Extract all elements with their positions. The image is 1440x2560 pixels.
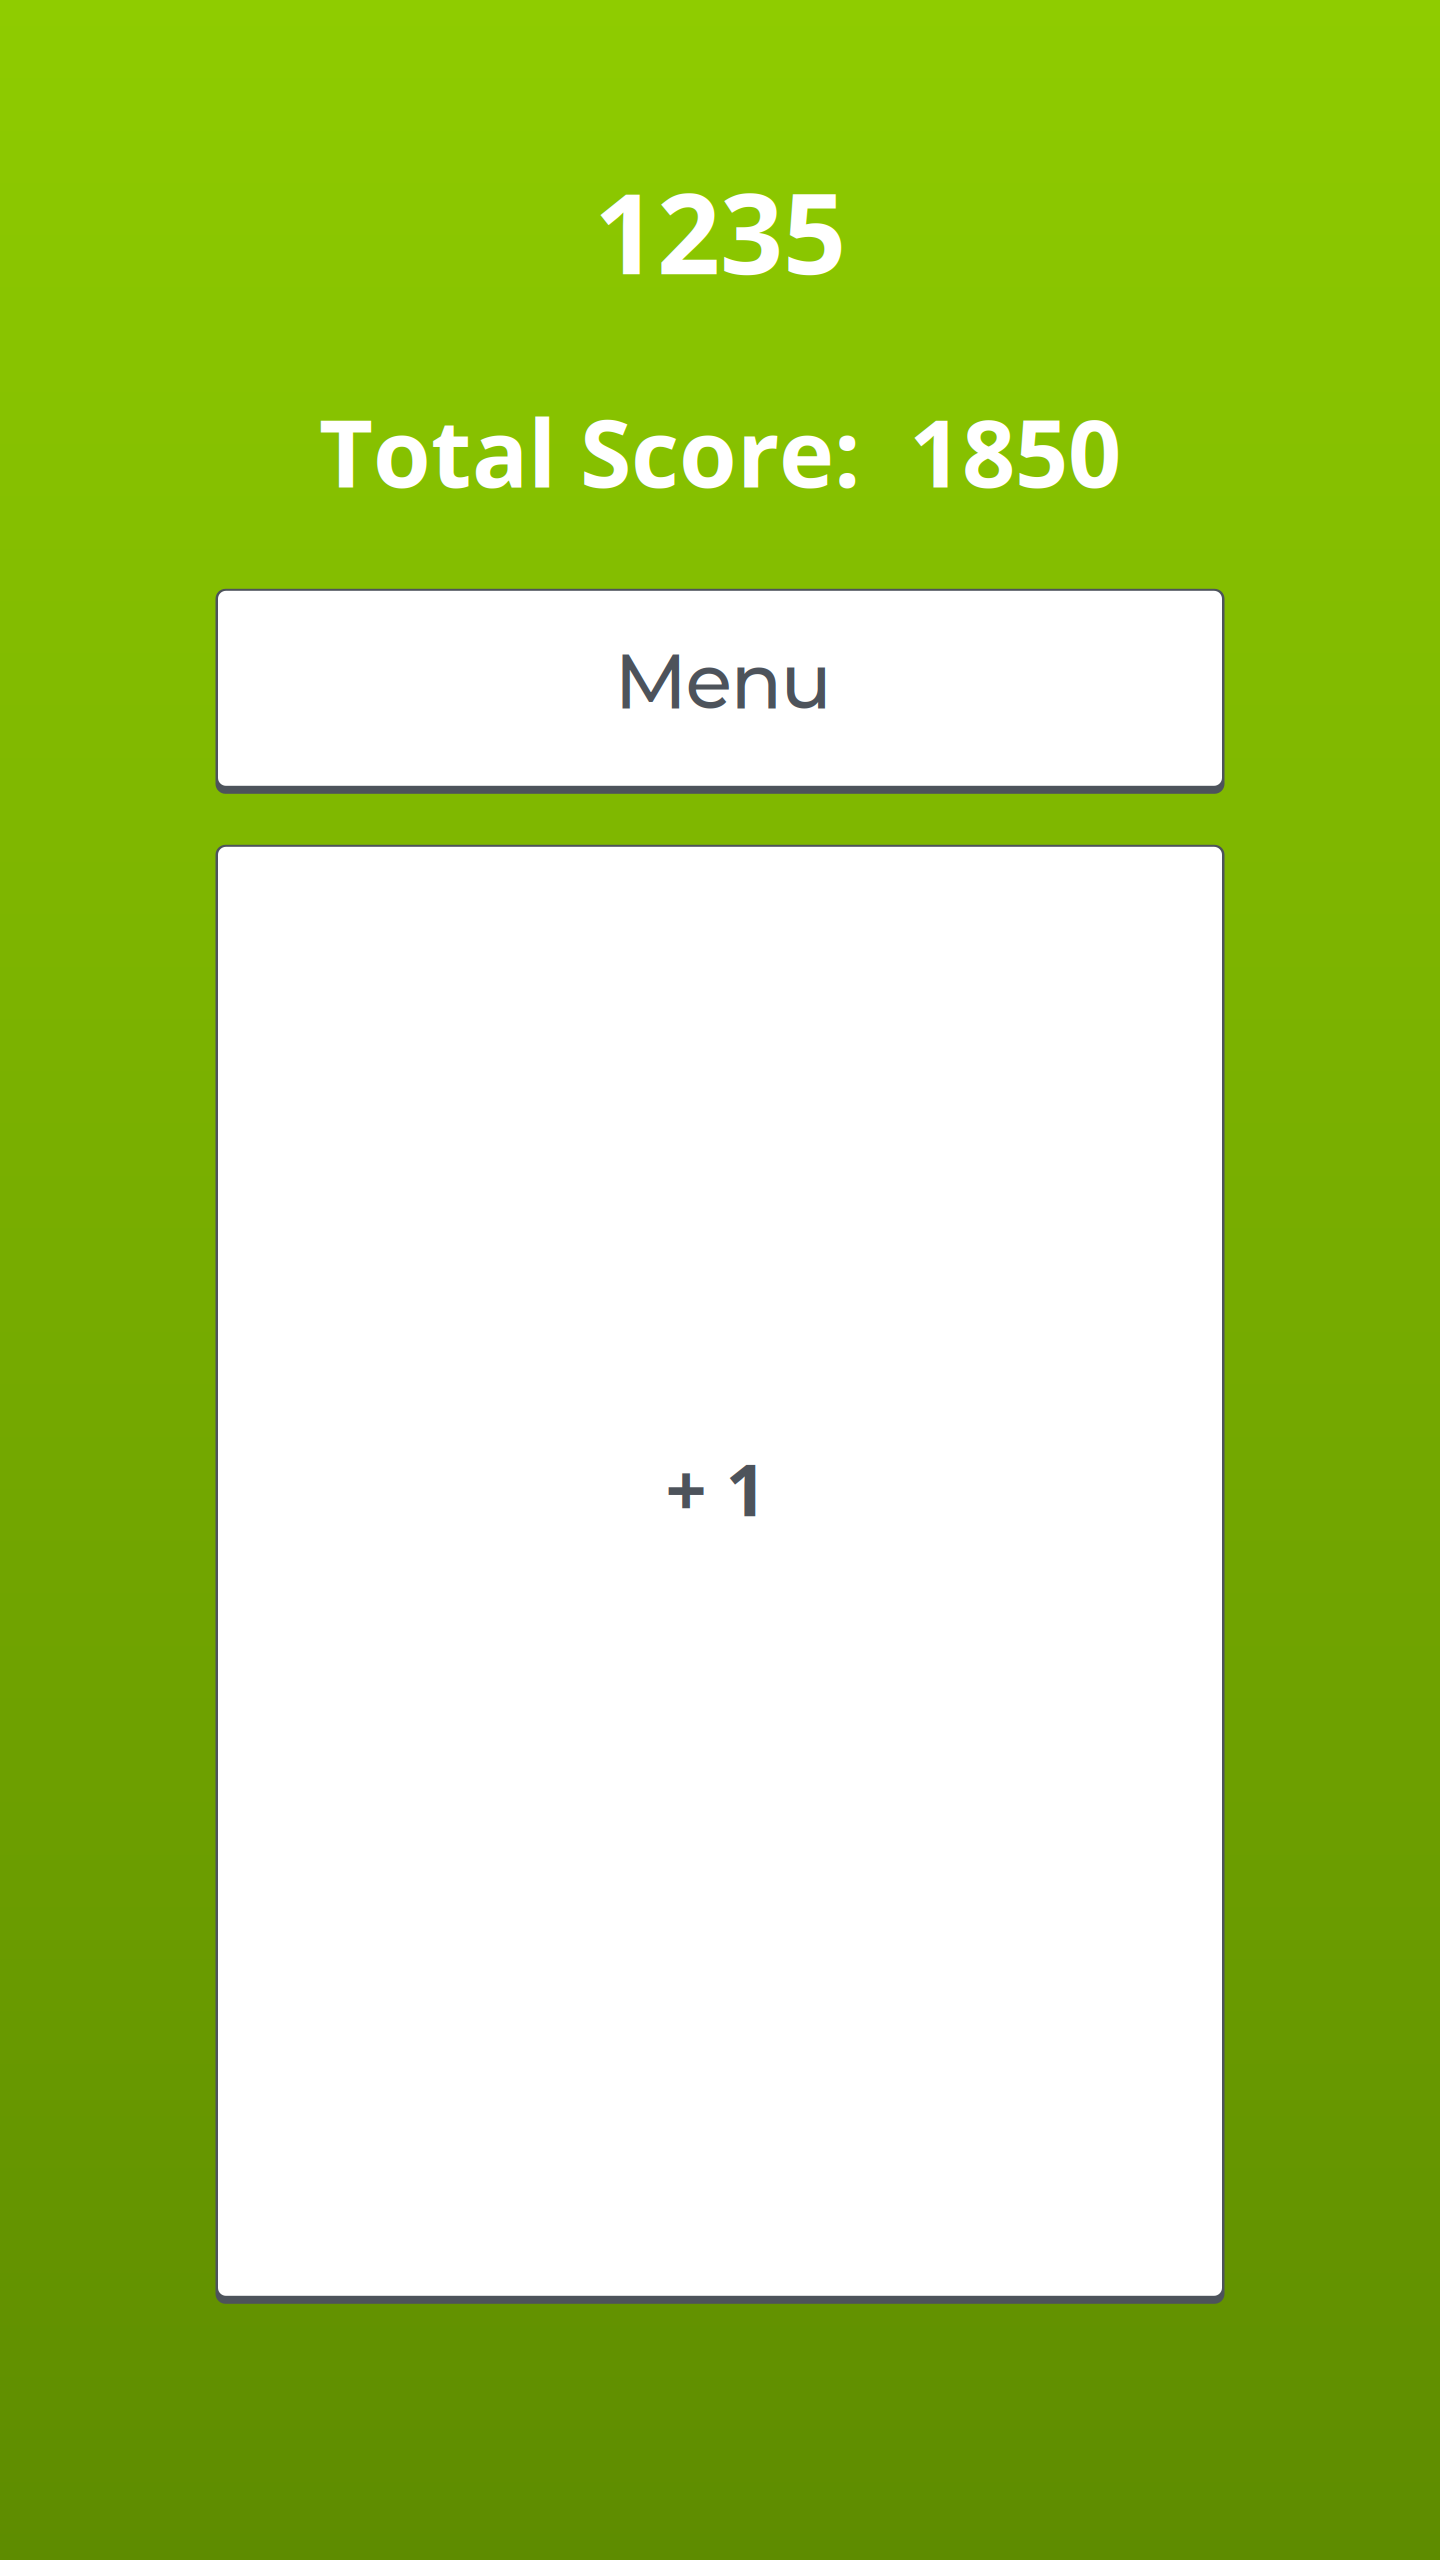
staticText: Total Score: 1850 xyxy=(319,388,1121,515)
staticText: + 1 xyxy=(665,1439,766,1537)
button[interactable]: Menu xyxy=(215,589,1224,794)
staticText: Menu xyxy=(614,635,831,728)
button[interactable]: + 1 xyxy=(215,845,1224,2304)
staticText: 1235 xyxy=(594,156,846,307)
